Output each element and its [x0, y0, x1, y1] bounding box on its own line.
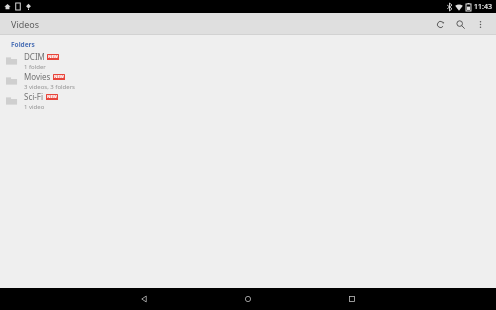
button[interactable]: Home — [238, 289, 258, 309]
staticText: NEW — [48, 54, 58, 60]
staticText: 1 folder — [24, 63, 46, 71]
staticText: 3 videos, 3 folders — [24, 83, 75, 91]
staticText: NEW — [54, 74, 64, 80]
staticText: NEW — [47, 94, 57, 100]
button[interactable]: Back — [134, 289, 154, 309]
button[interactable]: Refresh — [430, 14, 450, 34]
staticText: 1 video — [24, 103, 45, 111]
button[interactable]: DCIM — [0, 51, 496, 71]
button[interactable]: Recent apps — [342, 289, 362, 309]
staticText: DCIM — [24, 51, 45, 62]
staticText: Sci-Fi — [24, 91, 44, 102]
button[interactable]: Movies — [0, 71, 496, 91]
staticText: Videos — [11, 18, 40, 30]
button[interactable]: Sci-Fi — [0, 91, 496, 111]
staticText: Folders — [11, 40, 35, 49]
staticText: 11:43 — [474, 2, 492, 12]
button[interactable]: Search — [450, 14, 470, 34]
staticText: Movies — [24, 71, 51, 82]
button[interactable]: More options — [470, 14, 490, 34]
